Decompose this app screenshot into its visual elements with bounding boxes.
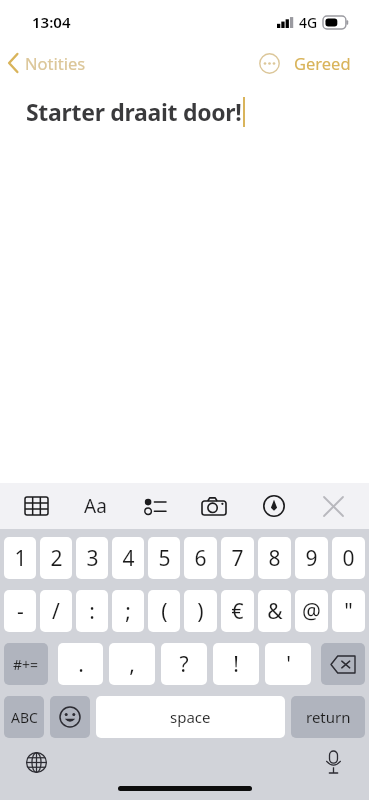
button[interactable]: ' bbox=[265, 643, 311, 685]
button[interactable]: : bbox=[76, 590, 108, 632]
button[interactable]: Tekstopmaak bbox=[73, 486, 117, 526]
staticText: Notities bbox=[25, 52, 86, 74]
button[interactable]: Tabel bbox=[14, 486, 58, 526]
button[interactable]: Sluit bbox=[311, 486, 355, 526]
button[interactable]: ( bbox=[148, 590, 180, 632]
button[interactable]: 6 bbox=[184, 537, 217, 579]
button[interactable]: . bbox=[58, 643, 103, 685]
button[interactable]: 3 bbox=[76, 537, 108, 579]
button[interactable]: space bbox=[96, 696, 285, 738]
staticText: 4 bbox=[122, 544, 135, 573]
staticText: 5 bbox=[158, 544, 171, 573]
staticText: , bbox=[129, 650, 135, 679]
staticText: 8 bbox=[268, 544, 281, 573]
staticText: 2 bbox=[50, 544, 63, 573]
button[interactable]: 8 bbox=[258, 537, 291, 579]
button[interactable]: 1 bbox=[4, 537, 36, 579]
button[interactable]: return bbox=[291, 696, 365, 738]
button[interactable]: Notities bbox=[0, 46, 98, 80]
button[interactable]: € bbox=[221, 590, 254, 632]
button[interactable]: ; bbox=[112, 590, 144, 632]
staticText: 1 bbox=[14, 544, 27, 573]
staticText: ? bbox=[179, 650, 189, 679]
staticText: 13:04 bbox=[32, 12, 71, 32]
staticText: #+= bbox=[13, 655, 39, 674]
staticText: : bbox=[89, 597, 95, 626]
button[interactable]: " bbox=[332, 590, 365, 632]
staticText: € bbox=[231, 597, 244, 626]
staticText: ABC bbox=[11, 708, 38, 727]
button[interactable]: ! bbox=[213, 643, 259, 685]
button[interactable]: Backspace bbox=[321, 643, 365, 685]
button[interactable]: Camera bbox=[192, 486, 236, 526]
button[interactable]: ? bbox=[161, 643, 207, 685]
staticText: 6 bbox=[194, 544, 207, 573]
staticText: Gereed bbox=[294, 52, 351, 74]
staticText: - bbox=[17, 597, 24, 626]
button[interactable]: 4 bbox=[112, 537, 144, 579]
button[interactable]: Meer bbox=[252, 46, 286, 80]
staticText: 3 bbox=[86, 544, 99, 573]
button[interactable]: , bbox=[109, 643, 155, 685]
button[interactable]: Dicteer bbox=[313, 742, 353, 782]
button[interactable]: ) bbox=[184, 590, 217, 632]
button[interactable]: 7 bbox=[221, 537, 254, 579]
button[interactable]: 0 bbox=[332, 537, 365, 579]
button[interactable]: Emoji bbox=[50, 696, 90, 738]
staticText: 4G bbox=[299, 13, 318, 32]
button[interactable]: Checklist bbox=[133, 486, 177, 526]
button[interactable]: Taal wijzigen bbox=[16, 742, 56, 782]
button[interactable]: Markeringen bbox=[252, 486, 296, 526]
button[interactable]: - bbox=[4, 590, 36, 632]
button[interactable]: 2 bbox=[40, 537, 72, 579]
staticText: 7 bbox=[231, 544, 244, 573]
staticText: " bbox=[344, 597, 353, 626]
button[interactable]: 5 bbox=[148, 537, 180, 579]
staticText: ) bbox=[197, 597, 204, 626]
staticText: ! bbox=[233, 650, 239, 679]
staticText: Starter draait door! bbox=[26, 96, 242, 127]
staticText: @ bbox=[302, 597, 321, 626]
staticText: return bbox=[306, 707, 351, 727]
button[interactable]: 9 bbox=[295, 537, 328, 579]
staticText: ( bbox=[161, 597, 168, 626]
staticText: 9 bbox=[305, 544, 318, 573]
staticText: / bbox=[52, 597, 60, 626]
staticText: space bbox=[170, 707, 211, 727]
button[interactable]: Gereed bbox=[286, 46, 369, 80]
staticText: & bbox=[267, 597, 283, 626]
staticText: . bbox=[78, 650, 84, 679]
button[interactable]: @ bbox=[295, 590, 328, 632]
staticText: ' bbox=[286, 650, 291, 679]
button[interactable]: ABC bbox=[4, 696, 44, 738]
staticText: ; bbox=[125, 597, 131, 626]
staticText: 0 bbox=[342, 544, 355, 573]
button[interactable]: / bbox=[40, 590, 72, 632]
button[interactable]: #+= bbox=[4, 643, 48, 685]
button[interactable]: & bbox=[258, 590, 291, 632]
staticText: Aa bbox=[84, 493, 107, 519]
